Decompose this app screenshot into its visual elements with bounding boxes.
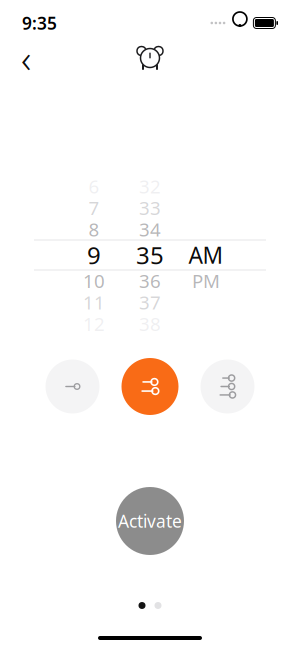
staticText: 33 xyxy=(139,195,161,220)
staticText: 11 xyxy=(83,290,105,315)
staticText: 38 xyxy=(139,311,161,336)
button[interactable]: Activate xyxy=(116,487,184,555)
staticText: 7 xyxy=(88,195,99,220)
staticText: 8 xyxy=(88,217,99,242)
button[interactable]: Medium fan speed, selected xyxy=(121,358,178,415)
staticText: 32 xyxy=(139,174,161,199)
staticText: 35 xyxy=(136,239,164,271)
staticText: 9 xyxy=(87,239,101,271)
staticText: AM xyxy=(188,240,223,270)
staticText: 34 xyxy=(139,217,161,242)
staticText: 6 xyxy=(88,174,99,199)
button[interactable]: Low fan speed xyxy=(45,359,99,413)
staticText: 37 xyxy=(139,290,161,315)
staticText: 10 xyxy=(83,268,105,293)
staticText: 36 xyxy=(139,268,161,293)
staticText: ‹ xyxy=(21,32,31,84)
staticText: PM xyxy=(192,268,220,293)
staticText: 12 xyxy=(83,311,105,336)
staticText: Activate xyxy=(118,509,182,532)
button[interactable]: High fan speed xyxy=(200,359,254,413)
button[interactable]: Back xyxy=(8,40,44,76)
staticText: 9:35 xyxy=(22,11,57,34)
